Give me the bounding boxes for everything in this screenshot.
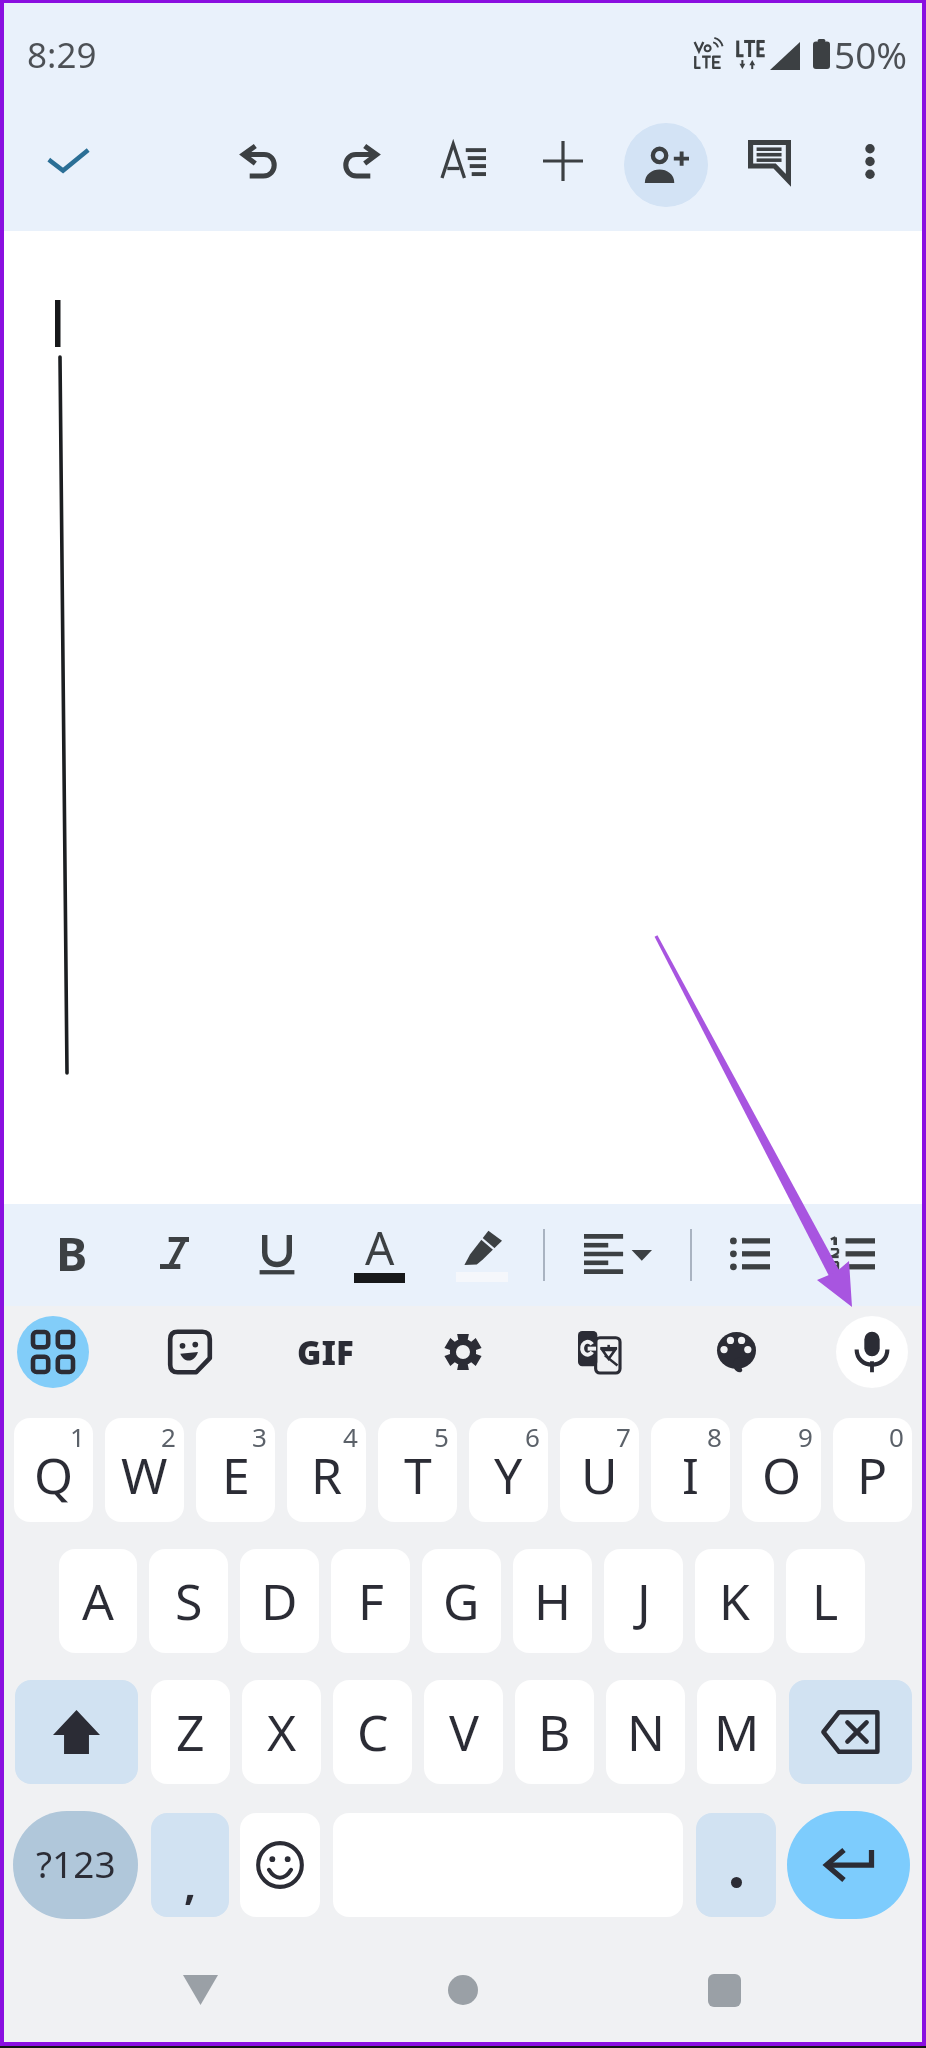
staticText: S xyxy=(175,1567,203,1635)
staticText: O xyxy=(762,1441,802,1509)
button[interactable]: Z xyxy=(151,1680,230,1784)
button[interactable]: Text formatting xyxy=(422,119,506,203)
staticText: Q xyxy=(34,1441,74,1509)
button[interactable]: Translate xyxy=(563,1316,635,1388)
button[interactable]: Paragraph alignment xyxy=(570,1204,666,1306)
staticText: 8:29 xyxy=(27,31,97,79)
button[interactable]: Y xyxy=(469,1418,548,1522)
button[interactable]: J xyxy=(604,1549,683,1653)
button[interactable]: F xyxy=(331,1549,410,1653)
button[interactable]: R xyxy=(287,1418,366,1522)
staticText: D xyxy=(261,1567,298,1635)
staticText: 3 xyxy=(252,1419,267,1454)
staticText: C xyxy=(357,1698,389,1766)
button[interactable]: Settings xyxy=(427,1316,499,1388)
staticText: 7 xyxy=(616,1419,631,1454)
button[interactable]: Italic xyxy=(126,1204,222,1306)
button[interactable]: Stickers xyxy=(154,1316,226,1388)
button[interactable]: Themes xyxy=(700,1316,772,1388)
staticText: , xyxy=(184,1855,196,1912)
staticText: A xyxy=(365,1216,395,1279)
staticText: 2 xyxy=(161,1419,176,1454)
staticText: GIF xyxy=(297,1330,354,1375)
button[interactable]: Share xyxy=(624,123,708,207)
button[interactable]: Home xyxy=(423,1957,503,2023)
button[interactable]: Recents xyxy=(684,1957,764,2023)
staticText: T xyxy=(404,1441,432,1509)
button[interactable]: G xyxy=(422,1549,501,1653)
staticText: W xyxy=(121,1441,168,1509)
staticText: 4 xyxy=(343,1419,358,1454)
button[interactable]: K xyxy=(695,1549,774,1653)
button[interactable]: W xyxy=(105,1418,184,1522)
button[interactable] xyxy=(696,1813,776,1917)
button[interactable]: N xyxy=(606,1680,685,1784)
button[interactable]: V xyxy=(424,1680,503,1784)
staticText: L xyxy=(812,1567,839,1635)
staticText: M xyxy=(714,1698,760,1766)
staticText: U xyxy=(581,1441,618,1509)
button[interactable]: T xyxy=(378,1418,457,1522)
button[interactable]: H xyxy=(513,1549,592,1653)
button[interactable]: Bold xyxy=(24,1204,120,1306)
button[interactable]: GIF xyxy=(289,1316,361,1388)
staticText: Z xyxy=(176,1698,205,1766)
staticText: B xyxy=(56,1221,88,1285)
staticText: P xyxy=(857,1441,888,1509)
staticText: N xyxy=(627,1698,665,1766)
staticText: I xyxy=(682,1441,699,1509)
button[interactable]: E xyxy=(196,1418,275,1522)
button[interactable]: Insert xyxy=(521,119,605,203)
staticText: G xyxy=(443,1567,480,1635)
staticText: X xyxy=(267,1698,297,1766)
button[interactable]: C xyxy=(333,1680,412,1784)
button[interactable]: More options xyxy=(828,119,912,203)
staticText: 9 xyxy=(798,1419,813,1454)
button[interactable]: Bulleted list xyxy=(702,1204,798,1306)
button[interactable]: Keyboard apps xyxy=(17,1316,89,1388)
button[interactable]: Q xyxy=(14,1418,93,1522)
staticText: 6 xyxy=(525,1419,540,1454)
button[interactable]: , xyxy=(151,1813,229,1917)
staticText: H xyxy=(534,1567,572,1635)
button[interactable]: Enter xyxy=(787,1811,910,1919)
button[interactable]: ?123 xyxy=(13,1811,138,1919)
button[interactable]: Highlight color xyxy=(434,1204,530,1306)
button[interactable]: U xyxy=(560,1418,639,1522)
staticText: Y xyxy=(494,1441,523,1509)
button[interactable]: Numbered list xyxy=(804,1204,900,1306)
button[interactable]: Underline xyxy=(229,1204,325,1306)
button[interactable]: Comments xyxy=(727,119,811,203)
staticText: J xyxy=(637,1567,651,1635)
button[interactable]: L xyxy=(786,1549,865,1653)
staticText: B xyxy=(538,1698,571,1766)
button[interactable]: M xyxy=(697,1680,776,1784)
staticText: R xyxy=(311,1441,343,1509)
button[interactable]: O xyxy=(742,1418,821,1522)
button[interactable]: I xyxy=(651,1418,730,1522)
button[interactable]: A xyxy=(59,1549,137,1653)
button[interactable]: P xyxy=(833,1418,912,1522)
button[interactable]: S xyxy=(149,1549,228,1653)
staticText: F xyxy=(358,1567,384,1635)
button[interactable]: Backspace xyxy=(789,1680,912,1784)
staticText: ?123 xyxy=(36,1838,116,1888)
staticText: A xyxy=(82,1567,114,1635)
staticText: 0 xyxy=(889,1419,904,1454)
button[interactable]: Text color xyxy=(331,1204,427,1306)
button[interactable]: X xyxy=(242,1680,321,1784)
button[interactable]: Done xyxy=(26,119,110,203)
staticText: K xyxy=(719,1567,750,1635)
button[interactable]: Redo xyxy=(318,119,402,203)
button[interactable]: Voice input xyxy=(836,1316,908,1388)
button[interactable]: Shift xyxy=(15,1680,138,1784)
staticText: 1 xyxy=(70,1419,85,1454)
button[interactable]: Undo xyxy=(217,119,301,203)
staticText: 8 xyxy=(707,1419,722,1454)
button[interactable]: B xyxy=(515,1680,594,1784)
staticText: V xyxy=(449,1698,479,1766)
button[interactable]: Back xyxy=(160,1957,240,2023)
button[interactable]: D xyxy=(240,1549,319,1653)
button[interactable]: Emoji xyxy=(240,1813,320,1917)
